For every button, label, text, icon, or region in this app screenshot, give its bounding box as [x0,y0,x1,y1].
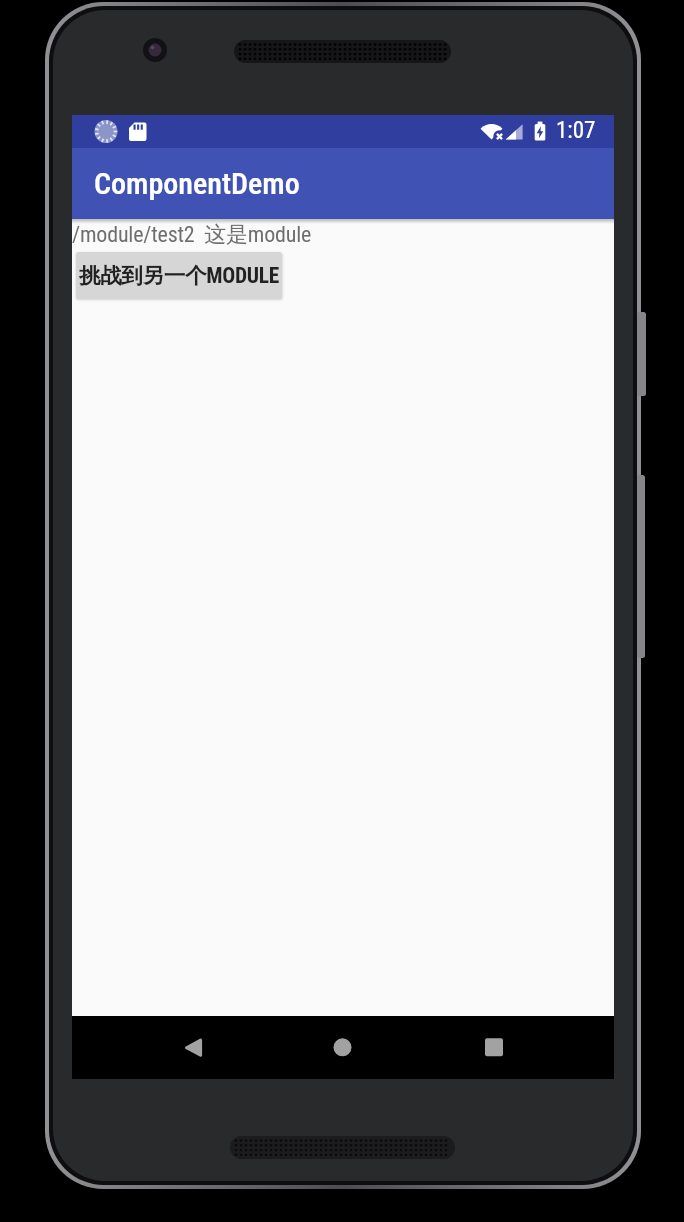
staticText: /module/test2 这是module [72,221,312,249]
button[interactable] [252,1016,433,1079]
staticText: ComponentDemo [94,166,300,201]
staticText: 1:07 [556,117,596,144]
button[interactable] [72,1016,252,1079]
staticText: 挑战到另一个MODULE [79,262,279,289]
button[interactable]: 挑战到另一个MODULE [76,252,282,299]
button[interactable] [433,1016,614,1079]
